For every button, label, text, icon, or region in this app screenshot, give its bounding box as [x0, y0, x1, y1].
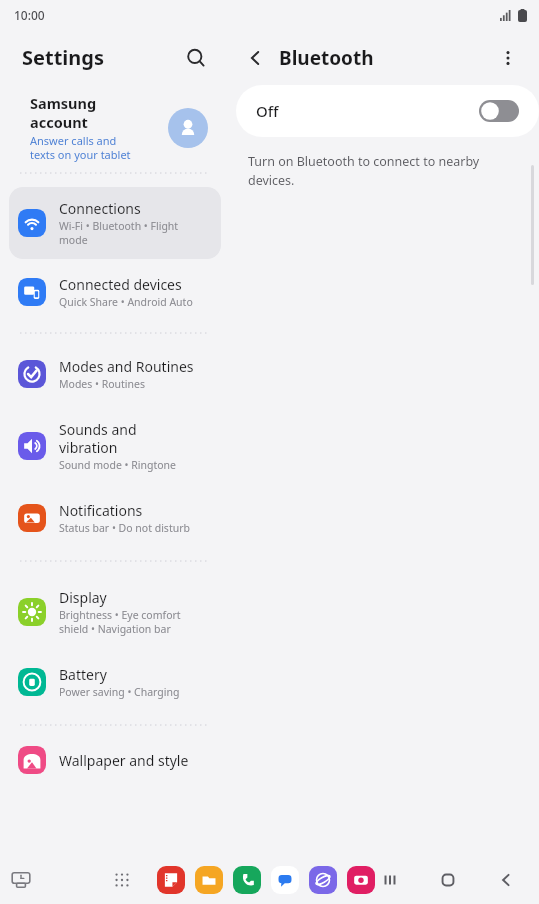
- button[interactable]: Modes and Routines: [9, 348, 221, 400]
- button[interactable]: Off: [236, 85, 539, 137]
- staticText: Quick Share • Android Auto: [59, 295, 193, 309]
- button[interactable]: Battery: [9, 656, 221, 708]
- button[interactable]: Connections: [9, 187, 221, 259]
- staticText: 10:00: [14, 7, 45, 23]
- button[interactable]: Camera: [347, 866, 375, 894]
- staticText: Samsung account: [30, 93, 97, 132]
- staticText: Modes • Routines: [59, 377, 146, 391]
- staticText: Power saving • Charging: [59, 685, 180, 699]
- button[interactable]: Notifications: [9, 492, 221, 544]
- staticText: Answer calls and texts on your tablet: [30, 133, 131, 162]
- button[interactable]: Back: [491, 865, 521, 895]
- staticText: Bluetooth: [279, 45, 374, 71]
- button[interactable]: Home: [433, 865, 463, 895]
- button[interactable]: My Files: [195, 866, 223, 894]
- staticText: Turn on Bluetooth to connect to nearby d…: [248, 153, 480, 189]
- staticText: Battery: [59, 665, 107, 684]
- button[interactable]: Phone: [233, 866, 261, 894]
- staticText: Wi-Fi • Bluetooth • Flight mode: [59, 219, 179, 247]
- staticText: Settings: [22, 44, 104, 71]
- button[interactable]: Messages: [271, 866, 299, 894]
- staticText: Sounds and vibration: [59, 420, 137, 457]
- button[interactable]: Sounds and vibration: [9, 410, 221, 482]
- staticText: Status bar • Do not disturb: [59, 521, 190, 535]
- staticText: Display: [59, 588, 107, 607]
- staticText: Connections: [59, 199, 141, 218]
- staticText: Sound mode • Ringtone: [59, 458, 176, 472]
- button[interactable]: Samsung account: [0, 85, 230, 170]
- staticText: Wallpaper and style: [59, 751, 189, 770]
- button[interactable]: Display: [9, 576, 221, 648]
- staticText: Brightness • Eye comfort shield • Naviga…: [59, 608, 181, 636]
- button[interactable]: Recent apps panel: [4, 863, 38, 897]
- button[interactable]: Search: [178, 40, 214, 76]
- button[interactable]: Internet: [309, 866, 337, 894]
- button[interactable]: Recents: [375, 865, 405, 895]
- staticText: Modes and Routines: [59, 357, 194, 376]
- button[interactable]: Samsung Notes: [157, 866, 185, 894]
- button[interactable]: More options: [491, 41, 525, 75]
- button[interactable]: Connected devices: [9, 266, 221, 318]
- button[interactable]: Apps: [109, 867, 135, 893]
- staticText: Connected devices: [59, 275, 182, 294]
- staticText: Notifications: [59, 501, 143, 520]
- button[interactable]: Back: [238, 41, 272, 75]
- staticText: Off: [256, 101, 479, 121]
- button[interactable]: Wallpaper and style: [9, 738, 221, 782]
